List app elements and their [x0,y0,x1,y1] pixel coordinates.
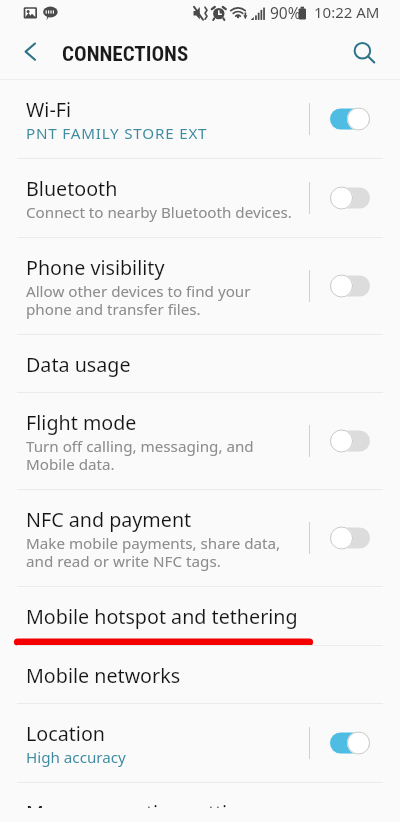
staticText: Connect to nearby Bluetooth devices. [26,202,292,223]
button[interactable]: Mobile hotspot and tethering [0,587,400,644]
staticText: Phone visibility [26,254,165,281]
button[interactable]: More connection settings [0,783,400,822]
staticText: Mobile networks [26,662,181,689]
button[interactable]: Search [346,38,380,72]
button[interactable]: Toggle Location [330,730,370,756]
staticText: Flight mode [26,409,137,436]
button[interactable]: Location [0,704,400,782]
button[interactable]: Wi-Fi [0,80,400,158]
button[interactable]: Toggle Phone visibility [330,273,370,299]
button[interactable]: Toggle Flight mode [330,428,370,454]
button[interactable]: Phone visibility [0,238,400,334]
button[interactable]: Flight mode [0,393,400,489]
staticText: Make mobile payments, share data, and re… [26,533,281,572]
button[interactable]: Bluetooth [0,159,400,237]
staticText: CONNECTIONS [62,42,189,67]
staticText: Bluetooth [26,175,118,202]
button[interactable]: Toggle NFC and payment [330,525,370,551]
staticText: More connection settings [26,799,261,808]
staticText: 10:22 AM [314,2,380,22]
button[interactable]: Mobile networks [0,646,400,703]
button[interactable]: Toggle Bluetooth [330,185,370,211]
staticText: Mobile hotspot and tethering [26,603,298,630]
button[interactable]: Back [14,39,48,73]
staticText: High accuracy [26,747,126,768]
button[interactable]: Toggle Wi-Fi [330,106,370,132]
staticText: Allow other devices to find your phone a… [26,281,251,320]
staticText: Turn off calling, messaging, and Mobile … [26,436,254,475]
staticText: Data usage [26,351,131,378]
staticText: Location [26,720,105,747]
button[interactable]: Data usage [0,335,400,392]
staticText: PNT FAMILY STORE EXT [26,123,208,144]
staticText: Wi-Fi [26,96,72,123]
staticText: NFC and payment [26,506,192,533]
staticText: 90% [270,2,301,23]
button[interactable]: NFC and payment [0,490,400,586]
